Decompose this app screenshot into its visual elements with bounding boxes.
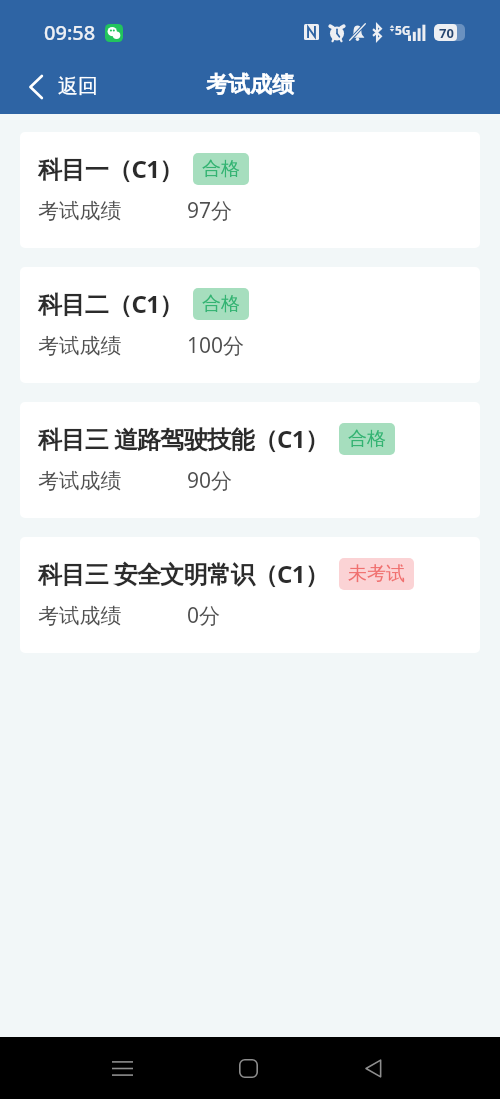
button[interactable]: Back [348,1043,398,1093]
staticText: 合格 [202,292,240,316]
button[interactable]: 科目三 道路驾驶技能（C1） [20,402,480,518]
staticText: 考试成绩 [38,603,122,629]
staticText: 返回 [58,74,98,99]
staticText: 考试成绩 [38,333,122,359]
button[interactable]: Home [223,1043,273,1093]
staticText: 科目二（C1） [38,287,183,320]
staticText: 90分 [187,466,233,495]
staticText: 考试成绩 [38,468,122,494]
staticText: 5G [395,22,411,38]
button[interactable]: 科目三 安全文明常识（C1） [20,537,480,653]
staticText: 09:58 [44,19,96,46]
staticText: 考试成绩 [38,198,122,224]
button[interactable]: 返回 [0,64,112,109]
button[interactable]: Recent apps [97,1043,147,1093]
staticText: 100分 [187,331,245,360]
staticText: 科目三 道路驾驶技能（C1） [38,422,329,455]
staticText: 合格 [348,427,386,451]
staticText: 合格 [202,157,240,181]
button[interactable]: 科目一（C1） [20,132,480,248]
staticText: 97分 [187,196,233,225]
button[interactable]: 科目二（C1） [20,267,480,383]
staticText: 考试成绩 [206,71,294,99]
staticText: 科目三 安全文明常识（C1） [38,557,329,590]
staticText: 70 [439,24,454,41]
staticText: 0分 [187,601,221,630]
staticText: 未考试 [348,562,405,586]
staticText: 科目一（C1） [38,152,183,185]
